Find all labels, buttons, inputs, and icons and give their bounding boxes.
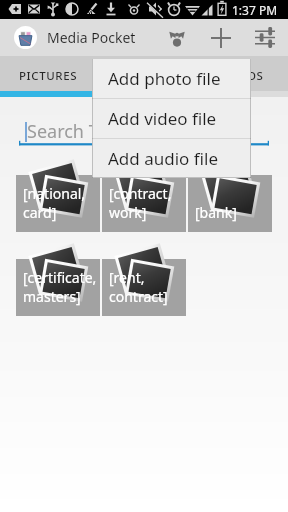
button[interactable]: Add — [199, 19, 243, 56]
button[interactable]: Add photo file — [92, 59, 251, 98]
staticText: card] — [23, 203, 57, 222]
staticText: contract] — [109, 287, 168, 306]
staticText: Add photo file — [108, 67, 221, 90]
button[interactable]: Add video file — [92, 99, 251, 138]
staticText: [bank] — [195, 203, 237, 222]
button[interactable]: Add audio file — [92, 139, 251, 178]
staticText: masters] — [23, 287, 81, 306]
staticText: PICTURES — [19, 68, 78, 84]
button[interactable]: [contract, — [102, 148, 186, 232]
staticText: work] — [109, 203, 147, 222]
staticText: Add audio file — [108, 147, 218, 170]
staticText: Search Title — [27, 119, 125, 144]
staticText: VIDEOS — [122, 68, 167, 84]
button[interactable]: Share — [155, 19, 199, 56]
button[interactable]: [rent, — [102, 232, 186, 316]
button[interactable]: [bank] — [188, 148, 272, 232]
button[interactable]: [national, — [16, 148, 100, 232]
staticText: [certificate, — [23, 268, 97, 287]
button[interactable]: PICTURES — [0, 58, 96, 93]
button[interactable]: VIDEOS — [96, 58, 192, 93]
button[interactable]: [certificate, — [16, 232, 100, 316]
staticText: [national, — [23, 184, 86, 203]
staticText: Add video file — [108, 107, 217, 130]
staticText: AUDIOS — [216, 68, 264, 84]
button[interactable]: AUDIOS — [192, 58, 288, 93]
staticText: [contract, — [109, 184, 172, 203]
staticText: 1:37 PM — [232, 2, 278, 18]
button[interactable]: Settings — [243, 19, 287, 56]
staticText: Media Pocket — [47, 28, 136, 47]
staticText: [rent, — [109, 268, 145, 287]
